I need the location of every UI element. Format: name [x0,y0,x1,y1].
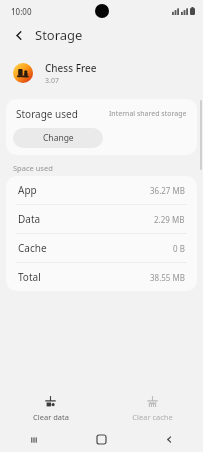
button[interactable]: Clear cache [101,393,203,425]
staticText: Change [43,132,74,144]
staticText: 3.07 [45,76,59,86]
staticText: Total [18,270,41,284]
button[interactable]: Change [13,128,103,148]
staticText: 2.29 MB [154,214,185,225]
button[interactable]: Total [6,263,197,291]
button[interactable]: Chess Free [0,53,203,93]
staticText: Storage [35,26,83,44]
button[interactable]: Clear data [0,393,101,425]
staticText: Space used [13,163,53,173]
staticText: Cache [18,241,47,255]
staticText: Clear cache [132,412,173,422]
staticText: 10:00 [11,6,32,17]
button[interactable]: Data [6,205,197,234]
button[interactable]: Home [67,427,135,452]
staticText: 0 B [173,243,185,254]
button[interactable]: App [6,176,197,205]
button[interactable]: Recents [0,427,67,452]
staticText: Internal shared storage [109,109,187,119]
staticText: 36.27 MB [150,185,185,196]
staticText: Clear data [33,412,69,422]
button[interactable]: Back [9,25,29,45]
staticText: 38.55 MB [150,272,185,283]
staticText: Data [18,212,41,226]
staticText: Chess Free [45,61,97,75]
button[interactable]: Cache [6,234,197,263]
button[interactable]: Back [135,427,203,452]
staticText: App [18,183,37,197]
staticText: Storage used [16,107,78,121]
